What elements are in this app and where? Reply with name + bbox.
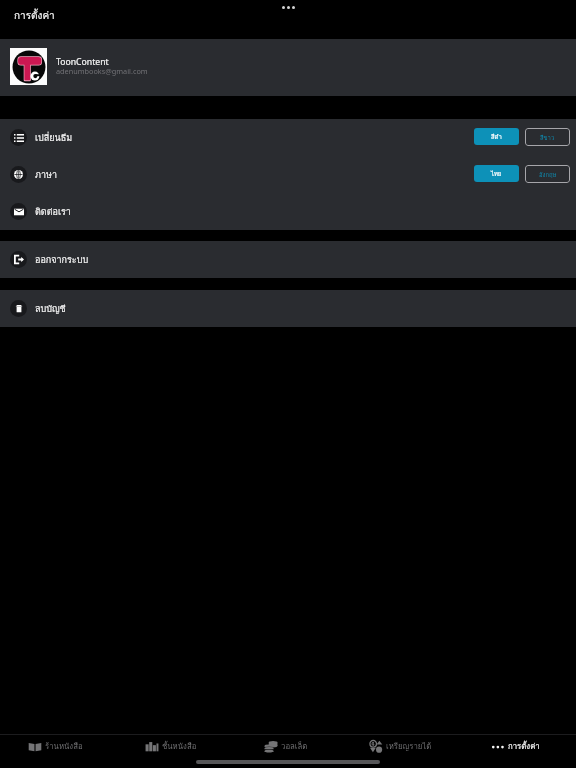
button[interactable]: ออกจากระบบ <box>0 241 576 278</box>
button[interactable]: Earnings <box>346 735 461 757</box>
staticText: การตั้งค่า <box>508 740 540 752</box>
staticText: วอลเล็ต <box>281 740 308 752</box>
button[interactable]: Settings <box>461 735 576 757</box>
staticText: ไทย <box>491 169 502 178</box>
button[interactable]: ลบบัญชี <box>0 290 576 327</box>
button[interactable]: ToonContent <box>0 39 576 96</box>
staticText: ภาษา <box>35 168 57 182</box>
staticText: ชั้นหนังสือ <box>162 740 197 752</box>
button[interactable]: สีดำ <box>474 128 519 145</box>
button[interactable]: ติดต่อเรา <box>0 193 576 230</box>
button[interactable]: สีขาว <box>525 128 570 146</box>
button[interactable]: ไทย <box>474 165 519 182</box>
button[interactable]: More options <box>282 6 295 9</box>
button[interactable]: Bookstore <box>0 735 116 757</box>
staticText: ร้านหนังสือ <box>45 740 83 752</box>
staticText: ลบบัญชี <box>35 302 66 316</box>
staticText: อังกฤษ <box>539 170 557 179</box>
staticText: เหรียญรายได้ <box>386 740 432 752</box>
button[interactable]: Wallet <box>231 735 346 757</box>
button[interactable]: Bookshelf <box>116 735 231 757</box>
staticText: ToonContent <box>56 56 109 68</box>
button[interactable]: อังกฤษ <box>525 165 570 183</box>
staticText: เปลี่ยนธีม <box>35 131 73 145</box>
button[interactable]: เปลี่ยนธีม <box>0 119 576 156</box>
staticText: สีขาว <box>540 133 555 142</box>
staticText: adenumbooks@gmail.com <box>56 66 148 76</box>
staticText: ออกจากระบบ <box>35 253 89 267</box>
staticText: ติดต่อเรา <box>35 205 71 219</box>
staticText: สีดำ <box>491 132 502 141</box>
staticText: การตั้งค่า <box>14 8 55 24</box>
button[interactable]: ภาษา <box>0 156 576 193</box>
